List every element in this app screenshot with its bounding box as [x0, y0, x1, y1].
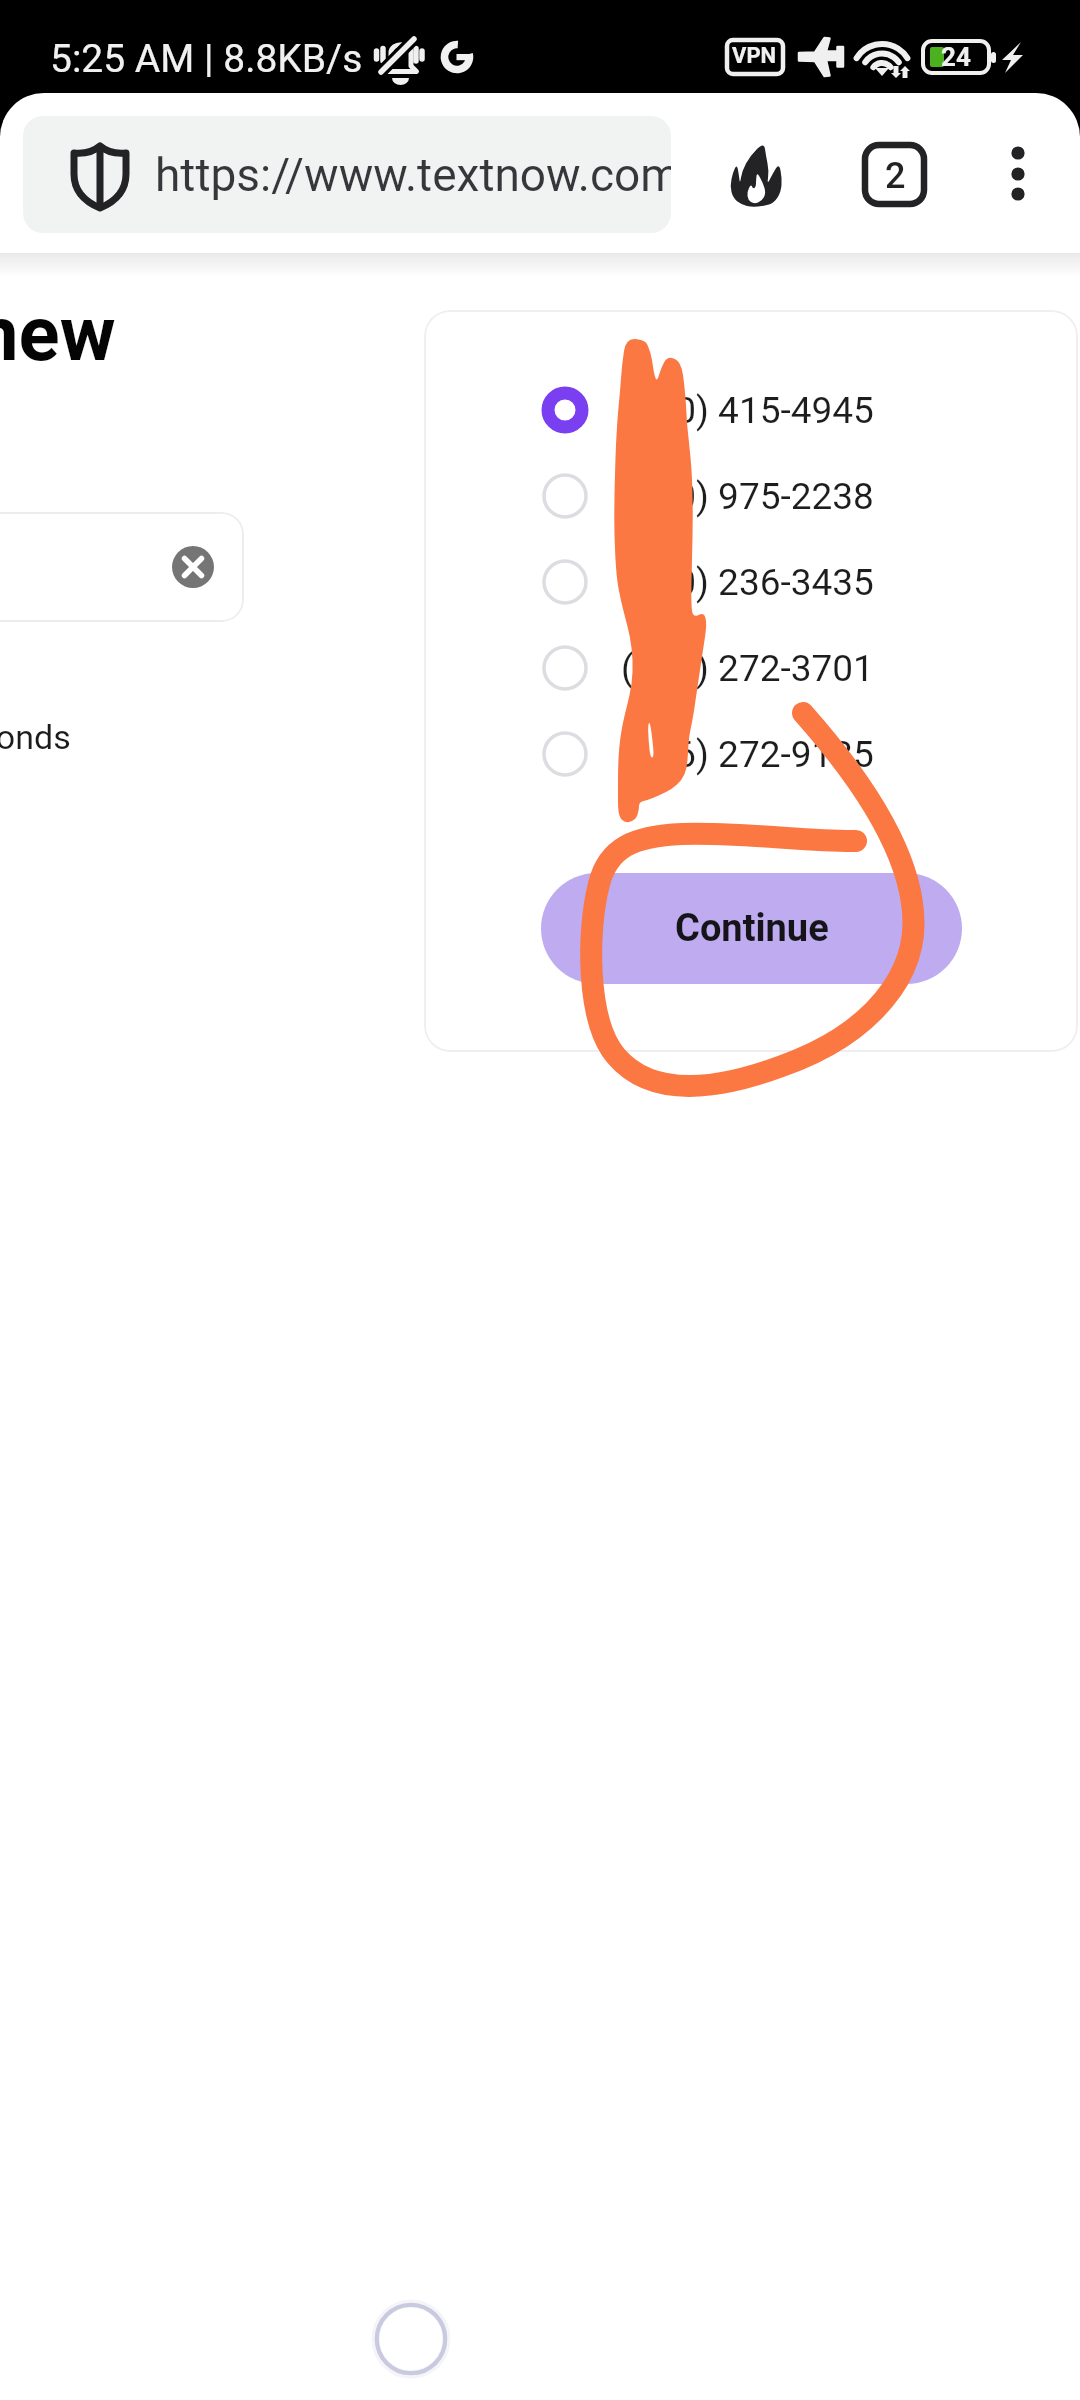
staticText: new: [0, 289, 116, 378]
button[interactable]: [0, 512, 244, 622]
button[interactable]: Tabs: [849, 132, 939, 222]
staticText: https://www.textnow.com: [155, 148, 671, 202]
button[interactable]: (650) 415-4945: [542, 370, 1002, 450]
staticText: VPN: [732, 43, 777, 69]
staticText: (650) 975-2238: [621, 475, 874, 518]
staticText: (650) 236-3435: [621, 561, 874, 604]
button[interactable]: (856) 272-3701: [542, 628, 1002, 708]
button[interactable]: Clear: [172, 546, 214, 588]
staticText: (856) 272-3701: [621, 647, 874, 690]
staticText: (856) 272-9135: [621, 733, 874, 776]
button[interactable]: More options: [972, 132, 1062, 222]
staticText: Continue: [675, 906, 829, 951]
button[interactable]: (650) 975-2238: [542, 456, 1002, 536]
staticText: 24: [941, 42, 971, 72]
staticText: 2: [885, 155, 906, 197]
staticText: 5:25 AM | 8.8KB/s: [50, 36, 363, 82]
button[interactable]: (856) 272-9135: [542, 714, 1002, 794]
button[interactable]: Incognito: [712, 123, 800, 211]
button[interactable]: Continue: [541, 873, 962, 984]
staticText: (650) 415-4945: [621, 389, 874, 432]
staticText: conds: [0, 717, 71, 757]
button[interactable]: https://www.textnow.com: [23, 116, 671, 233]
button[interactable]: (650) 236-3435: [542, 542, 1002, 622]
